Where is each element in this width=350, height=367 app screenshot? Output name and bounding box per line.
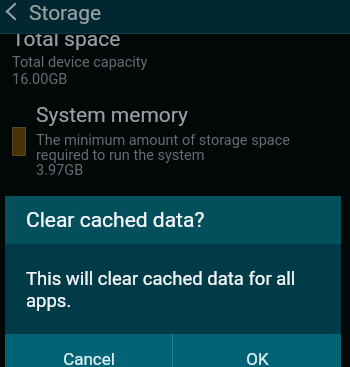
staticText: Cancel (63, 349, 115, 367)
staticText: 16.00GB (12, 71, 68, 88)
button[interactable]: Back (0, 0, 28, 34)
staticText: The minimum amount of storage space (36, 132, 290, 149)
staticText: Total device capacity (12, 54, 148, 71)
staticText: required to run the system (36, 147, 205, 164)
staticText: System memory (36, 103, 189, 128)
staticText: Total space (12, 27, 121, 52)
staticText: 3.97GB (36, 162, 84, 179)
button[interactable]: Cancel (5, 334, 172, 367)
staticText: Storage (29, 1, 102, 26)
staticText: OK (246, 349, 269, 367)
button[interactable]: OK (173, 334, 341, 367)
staticText: Clear cached data? (26, 208, 205, 233)
staticText: This will clear cached data for all apps… (26, 268, 296, 312)
